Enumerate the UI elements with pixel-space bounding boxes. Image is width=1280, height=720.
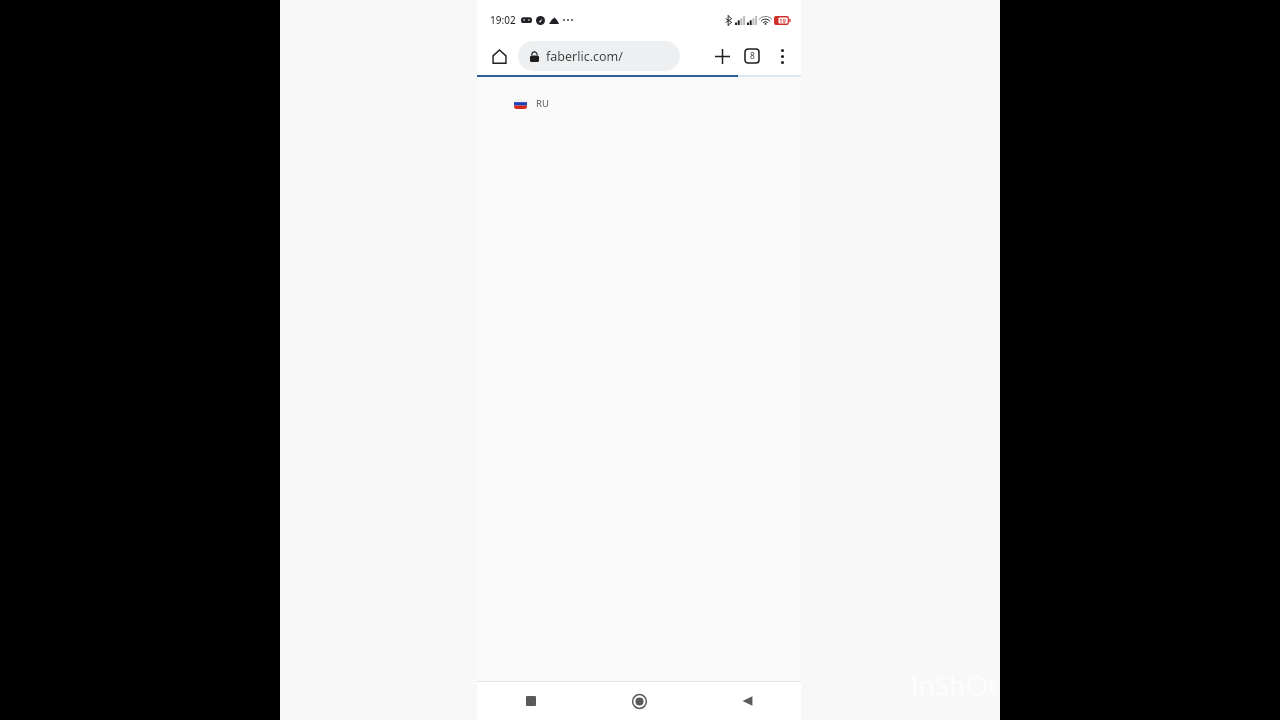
- staticText: faberlic.com/index.ph: [546, 48, 672, 65]
- button[interactable]: Home: [486, 43, 512, 69]
- staticText: RU: [536, 97, 549, 110]
- button[interactable]: New tab: [707, 41, 737, 71]
- button[interactable]: Back: [693, 682, 801, 720]
- button[interactable]: Home: [585, 682, 693, 720]
- button[interactable]: faberlic.com/index.ph: [518, 41, 680, 71]
- button[interactable]: Tabs, 8 open: [737, 41, 767, 71]
- button[interactable]: RU: [512, 95, 551, 112]
- staticText: 19: [779, 17, 786, 25]
- staticText: 8: [750, 50, 755, 62]
- button[interactable]: Recent apps: [477, 682, 585, 720]
- button[interactable]: More options: [767, 41, 797, 71]
- staticText: 19:02: [490, 13, 516, 27]
